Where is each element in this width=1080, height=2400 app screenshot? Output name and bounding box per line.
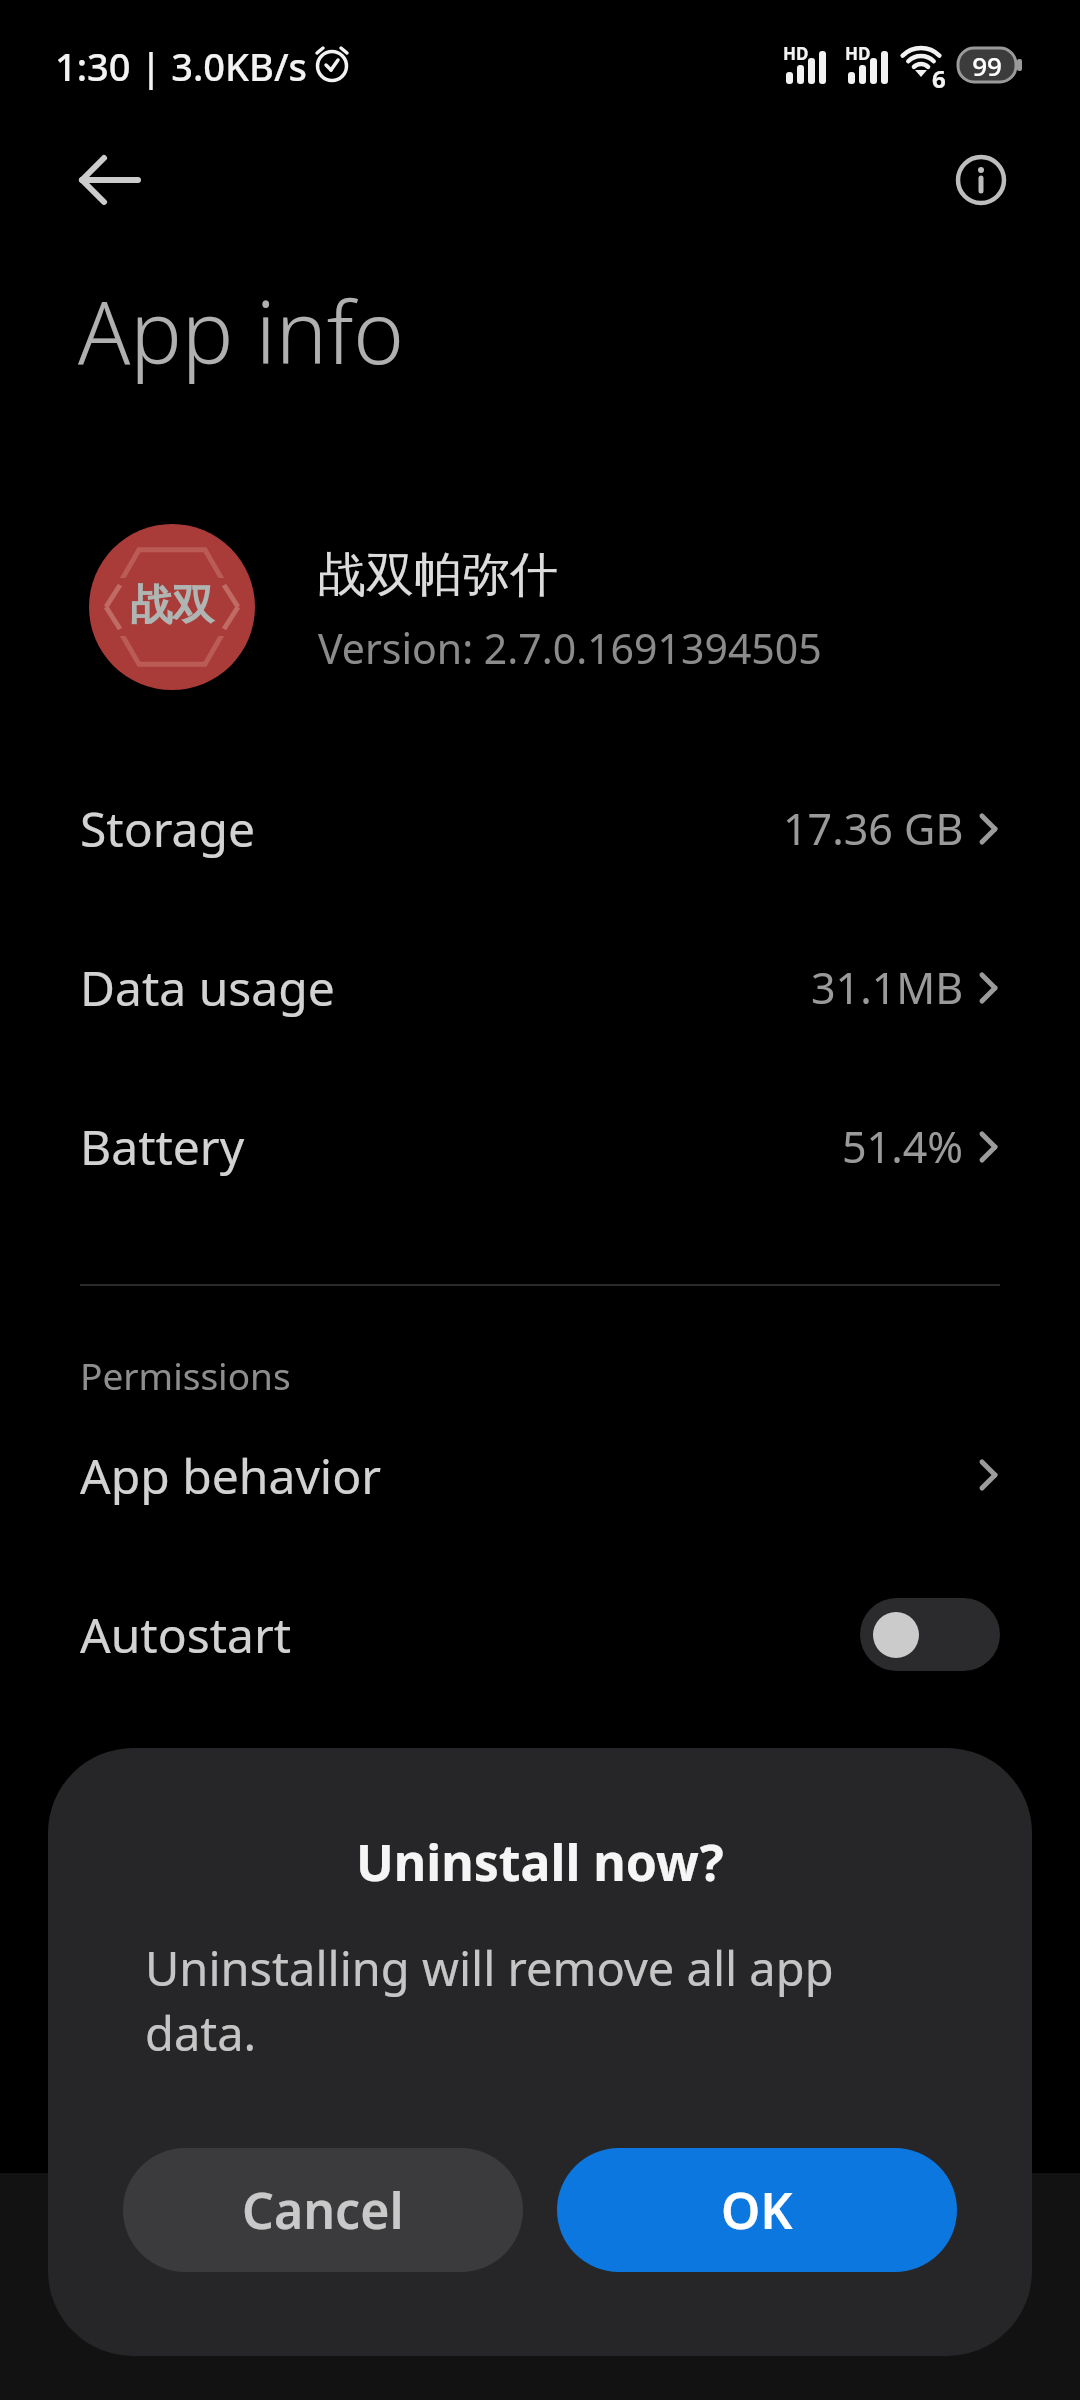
staticText: Version: 2.7.0.1691394505 <box>318 620 822 676</box>
button[interactable]: Data usage <box>0 932 1080 1042</box>
staticText: 1:30 | 3.0KB/s <box>55 40 308 92</box>
staticText: Data usage <box>80 955 335 1020</box>
staticText: App info <box>78 272 405 389</box>
button[interactable]: App behavior <box>0 1420 1080 1530</box>
staticText: Uninstalling will remove all app data. <box>145 1936 834 2065</box>
staticText: HD <box>783 42 809 65</box>
staticText: 战双 <box>130 579 214 632</box>
staticText: Uninstall now? <box>356 1828 724 1896</box>
staticText: Permissions <box>80 1350 291 1400</box>
button[interactable] <box>948 148 1014 212</box>
staticText: Battery <box>80 1114 245 1179</box>
button[interactable]: Battery <box>0 1091 1080 1201</box>
button[interactable]: Autostart <box>0 1579 1080 1689</box>
button[interactable]: Cancel <box>123 2148 523 2272</box>
staticText: 99 <box>956 48 1018 83</box>
staticText: App behavior <box>80 1443 382 1508</box>
staticText: 31.1MB <box>811 958 964 1017</box>
staticText: Autostart <box>80 1602 292 1667</box>
staticText: OK <box>721 2176 793 2244</box>
staticText: 6 <box>932 62 946 95</box>
button[interactable] <box>860 1598 1000 1671</box>
button[interactable] <box>70 148 150 212</box>
staticText: 战双帕弥什 <box>318 545 558 605</box>
button[interactable]: Storage <box>0 773 1080 883</box>
staticText: Cancel <box>242 2176 404 2244</box>
staticText: 17.36 GB <box>783 799 964 858</box>
staticText: Storage <box>80 796 256 861</box>
staticText: 51.4% <box>842 1117 964 1176</box>
staticText: HD <box>845 42 871 65</box>
button[interactable]: OK <box>557 2148 957 2272</box>
